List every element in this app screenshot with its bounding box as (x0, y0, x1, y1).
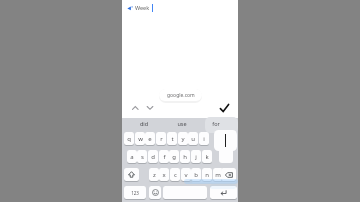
staticText: n (205, 171, 209, 179)
button[interactable]: w (135, 132, 145, 146)
button[interactable]: z (149, 168, 159, 182)
button[interactable]: i (199, 132, 209, 146)
button[interactable]: f (159, 150, 169, 164)
button[interactable]: g (169, 150, 179, 164)
staticText: use (175, 120, 189, 127)
button[interactable] (163, 186, 207, 200)
staticText: b (194, 171, 198, 179)
button[interactable]: 123 (124, 186, 146, 200)
staticText: Week (135, 4, 150, 11)
button[interactable]: d (148, 150, 158, 164)
button[interactable]: v (181, 168, 191, 182)
button[interactable]: e (145, 132, 155, 146)
staticText: 123 (131, 190, 139, 196)
button[interactable]: y (178, 132, 188, 146)
button[interactable]: c (170, 168, 180, 182)
button[interactable] (210, 186, 237, 200)
staticText: i (203, 135, 205, 143)
button[interactable]: s (137, 150, 147, 164)
button[interactable]: r (156, 132, 166, 146)
staticText: h (183, 153, 187, 161)
button[interactable]: j (191, 150, 201, 164)
staticText: y (181, 135, 185, 143)
staticText: r (160, 135, 163, 143)
staticText: g (172, 153, 176, 161)
button[interactable]: n (202, 168, 212, 182)
button[interactable]: b (191, 168, 201, 182)
staticText: s (141, 153, 144, 161)
staticText: e (148, 135, 152, 143)
staticText: w (138, 135, 143, 143)
staticText: c (174, 171, 177, 179)
button[interactable]: u (188, 132, 198, 146)
button[interactable]: google.com (159, 89, 202, 101)
staticText: for (209, 120, 223, 127)
staticText: q (127, 135, 131, 143)
staticText: google.com (167, 92, 195, 99)
button[interactable]: k (202, 150, 212, 164)
staticText: x (162, 171, 166, 179)
staticText: u (191, 135, 195, 143)
button[interactable] (124, 168, 139, 182)
button[interactable] (219, 103, 230, 113)
button[interactable] (149, 186, 161, 200)
button[interactable]: a (127, 150, 137, 164)
button[interactable]: m (213, 168, 223, 182)
staticText: d (151, 153, 155, 161)
button[interactable] (131, 105, 155, 111)
button[interactable]: q (124, 132, 134, 146)
staticText: z (153, 171, 156, 179)
staticText: t (171, 135, 174, 143)
staticText: did (137, 120, 151, 127)
button[interactable]: t (167, 132, 177, 146)
staticText: f (163, 153, 166, 161)
button[interactable] (221, 168, 236, 182)
staticText: k (205, 153, 209, 161)
staticText: m (215, 171, 221, 179)
button[interactable]: x (159, 168, 169, 182)
button[interactable]: h (180, 150, 190, 164)
staticText: v (184, 171, 188, 179)
staticText: j (195, 153, 197, 161)
staticText: a (130, 153, 134, 161)
